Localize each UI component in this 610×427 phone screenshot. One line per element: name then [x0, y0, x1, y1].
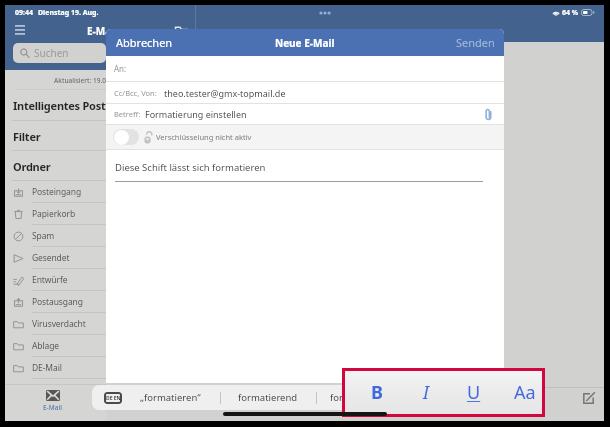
button[interactable]: formatier — [330, 391, 373, 404]
button[interactable]: U — [457, 371, 491, 414]
staticText: Spam — [32, 230, 55, 242]
staticText: Aa — [514, 380, 536, 405]
button[interactable]: formatierend — [238, 391, 298, 404]
button[interactable]: Folder — [175, 24, 188, 34]
button[interactable]: Attach file — [481, 107, 495, 121]
staticText: B — [371, 380, 383, 405]
button[interactable]: Ordner — [5, 151, 106, 181]
staticText: U — [467, 380, 481, 405]
button[interactable]: Abbrechen — [116, 35, 173, 50]
staticText: Intelligentes Postfa — [13, 98, 106, 113]
button[interactable]: Compose new mail — [577, 387, 600, 409]
staticText: DE-Mail — [32, 362, 62, 374]
button[interactable]: Spam — [5, 225, 106, 247]
button[interactable]: B — [360, 371, 394, 414]
staticText: 09:44 — [15, 8, 33, 18]
button[interactable]: „formatieren“ — [140, 391, 201, 404]
button[interactable]: Gesendet — [5, 247, 106, 269]
button[interactable]: Senden — [456, 35, 495, 50]
staticText: Filter — [13, 129, 41, 144]
staticText: Dienstag 19. Aug. — [38, 8, 99, 18]
staticText: Entwürfe — [32, 274, 68, 286]
staticText: 64 % — [562, 8, 579, 18]
button[interactable]: Papierkorb — [5, 203, 106, 225]
staticText: Virusverdacht — [32, 318, 86, 330]
button[interactable]: Intelligentes Postfa — [5, 90, 106, 121]
button[interactable]: I — [409, 371, 443, 414]
staticText: theo.tester@gmx-topmail.de — [164, 87, 286, 99]
button[interactable]: Ablage — [5, 335, 106, 357]
staticText: Postausgang — [32, 296, 83, 308]
staticText: Papierkorb — [32, 208, 76, 220]
staticText: Betreff: — [114, 109, 141, 119]
button[interactable]: E-Mail — [16, 385, 89, 421]
button[interactable]: Filter — [5, 121, 106, 151]
staticText: Aktualisiert: 19.0 — [54, 76, 106, 85]
staticText: Cc/Bcc, Von: — [114, 88, 157, 98]
button[interactable]: Posteingang — [5, 181, 106, 203]
button[interactable]: Aa — [508, 371, 542, 414]
button[interactable]: Encryption toggle — [113, 129, 139, 145]
staticText: E-Mail — [87, 24, 118, 38]
staticText: An: — [114, 63, 127, 74]
button[interactable]: An: — [106, 56, 504, 81]
button[interactable]: DE-Mail — [5, 357, 106, 379]
staticText: Ablage — [32, 340, 60, 352]
staticText: DE EN — [106, 395, 121, 402]
button[interactable]: Menu — [12, 22, 27, 36]
button[interactable]: Cc/Bcc, Von: — [106, 82, 504, 103]
staticText: Verschlüsselung nicht aktiv — [156, 132, 252, 142]
staticText: I — [423, 380, 429, 405]
staticText: Neue E-Mail — [275, 36, 335, 50]
staticText: Formatierung einstellen — [145, 108, 247, 120]
button[interactable]: Postausgang — [5, 291, 106, 313]
staticText: Gesendet — [32, 252, 70, 264]
staticText: Diese Schift lässt sich formatieren — [115, 161, 266, 174]
staticText: Suchen — [34, 46, 69, 60]
button[interactable]: Keyboard language DE EN — [104, 392, 122, 404]
button[interactable]: Virusverdacht — [5, 313, 106, 335]
staticText: Posteingang — [32, 186, 82, 198]
staticText: E-Mail — [43, 403, 62, 412]
button[interactable]: Suchen — [13, 43, 106, 63]
button[interactable]: Entwürfe — [5, 269, 106, 291]
staticText: Ordner — [13, 159, 51, 174]
